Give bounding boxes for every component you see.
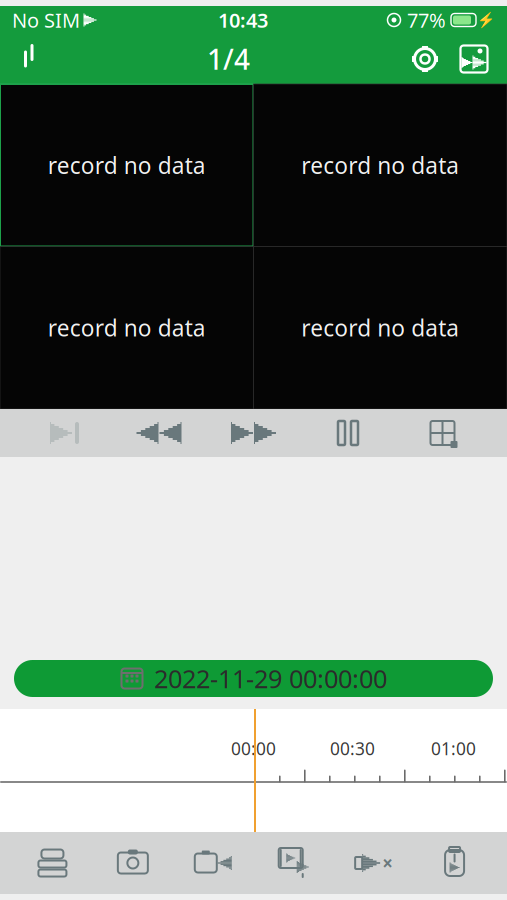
staticText: No SIM <box>12 7 80 33</box>
staticText: 01:00 <box>431 737 476 760</box>
button[interactable]: Gallery <box>449 34 499 84</box>
button[interactable]: Fast forward <box>223 411 283 455</box>
button[interactable]: Snapshot <box>105 834 161 892</box>
button[interactable]: Back <box>8 34 56 84</box>
staticText: record no data <box>301 313 459 343</box>
button[interactable]: Record <box>185 834 241 892</box>
button[interactable]: Filter recordings <box>266 834 322 892</box>
staticText: ⚡ <box>477 12 495 28</box>
staticText: record no data <box>48 150 206 180</box>
staticText: record no data <box>48 313 206 343</box>
button[interactable]: Pause <box>318 411 378 455</box>
staticText: 1/4 <box>207 40 250 78</box>
button[interactable]: Change layout <box>412 411 472 455</box>
staticText: 77% <box>402 7 446 33</box>
button[interactable]: 2022-11-29 00:00:00 <box>14 660 493 697</box>
button[interactable]: Mute <box>346 834 402 892</box>
button[interactable]: Step forward <box>34 411 94 455</box>
button[interactable]: Settings <box>401 34 449 84</box>
staticText: 2022-11-29 00:00:00 <box>154 662 387 695</box>
staticText: 00:00 <box>231 737 276 760</box>
staticText: × <box>382 851 393 875</box>
staticText: 00:30 <box>330 737 375 760</box>
staticText: 10:43 <box>218 7 268 33</box>
button[interactable]: Device list <box>24 834 80 892</box>
staticText: record no data <box>301 150 459 180</box>
button[interactable]: Rewind <box>129 411 189 455</box>
button[interactable]: Export to USB <box>427 834 483 892</box>
